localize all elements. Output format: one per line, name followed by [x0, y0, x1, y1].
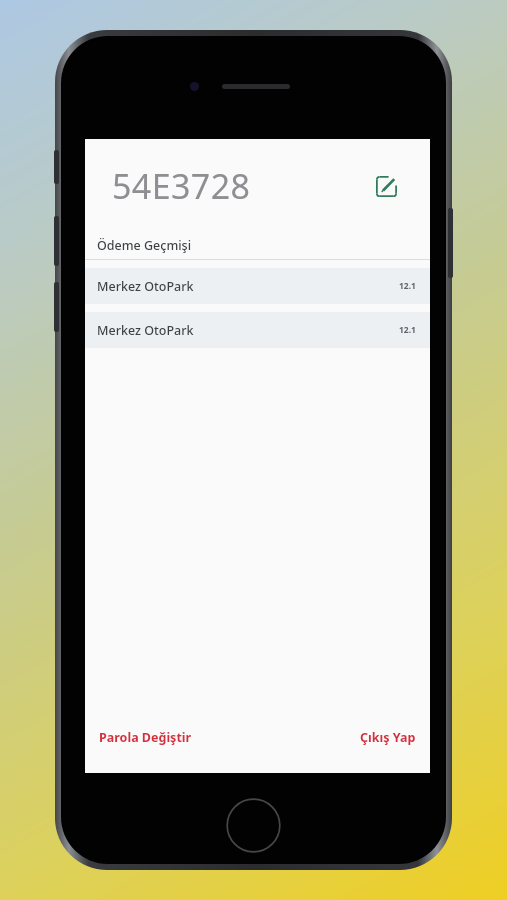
staticText: Ödeme Geçmişi — [97, 237, 192, 254]
button[interactable]: Çıkış Yap — [357, 722, 419, 753]
button[interactable]: Merkez OtoPark — [85, 268, 430, 304]
staticText: 54E3728 — [112, 163, 251, 209]
button[interactable]: Parola Değiştir — [96, 722, 195, 753]
staticText: Merkez OtoPark — [97, 322, 194, 339]
staticText: 12.1 — [399, 324, 416, 336]
staticText: Parola Değiştir — [99, 729, 192, 746]
staticText: 12.1 — [399, 280, 416, 292]
staticText: Çıkış Yap — [360, 729, 416, 746]
staticText: Merkez OtoPark — [97, 278, 194, 295]
button[interactable]: Merkez OtoPark — [85, 312, 430, 348]
button[interactable]: Düzenle — [369, 169, 403, 203]
